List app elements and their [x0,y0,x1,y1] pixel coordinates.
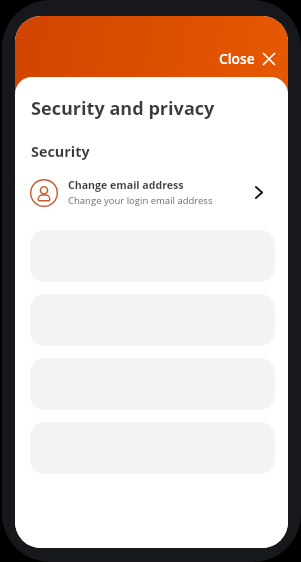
staticText: Change your login email address [68,194,213,207]
staticText: Change email address [68,178,184,192]
staticText: Security [31,142,90,162]
button[interactable]: Close [205,45,288,72]
button[interactable]: Change email address [15,174,288,211]
staticText: Security and privacy [31,96,215,121]
staticText: Close [219,49,255,68]
